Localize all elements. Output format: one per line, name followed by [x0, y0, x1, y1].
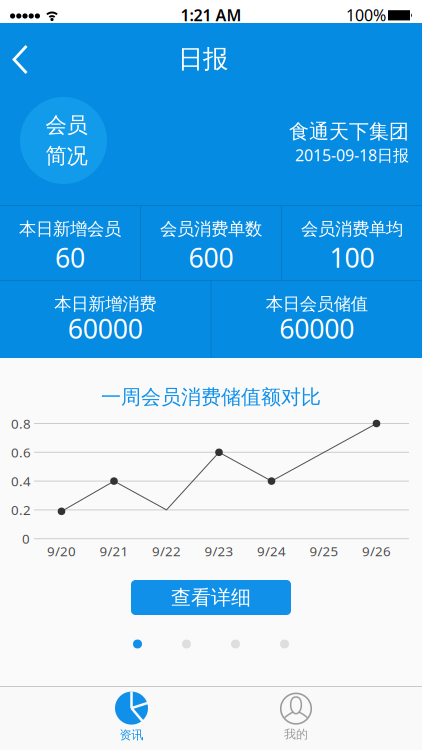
staticText: 会员消费单数 — [160, 218, 262, 240]
button[interactable]: 查看详细 — [131, 580, 291, 615]
staticText: 100 — [329, 240, 374, 275]
staticText: 9/21 — [99, 542, 128, 560]
staticText: 9/26 — [362, 542, 391, 560]
staticText: 60000 — [68, 311, 143, 346]
staticText: 本日新增会员 — [19, 218, 121, 240]
staticText: 0.2 — [11, 501, 31, 519]
staticText: 600 — [188, 240, 233, 275]
staticText: 会员消费单均 — [301, 218, 403, 240]
staticText: 0 — [22, 530, 30, 547]
staticText: 60000 — [279, 311, 354, 346]
staticText: 9/25 — [309, 542, 338, 560]
staticText: 食通天下集团 — [289, 119, 409, 144]
staticText: 60 — [55, 240, 85, 275]
staticText: 2015-09-18日报 — [295, 144, 409, 166]
staticText: 本日新增消费 — [54, 293, 156, 315]
staticText: 9/22 — [152, 542, 181, 560]
staticText: 0.4 — [11, 472, 31, 490]
staticText: 一周会员消费储值额对比 — [101, 385, 321, 409]
staticText: 100% — [346, 4, 386, 26]
staticText: 0.8 — [11, 415, 31, 432]
button[interactable]: 资讯 — [81, 688, 181, 746]
staticText: 我的 — [284, 727, 308, 742]
button[interactable]: 我的 — [246, 688, 346, 746]
staticText: 查看详细 — [171, 585, 251, 610]
staticText: 简况 — [45, 143, 87, 169]
staticText: 本日会员储值 — [266, 293, 368, 315]
staticText: 0.6 — [11, 443, 31, 461]
staticText: 会员 — [45, 112, 87, 138]
button[interactable]: Back — [2, 34, 40, 85]
staticText: 9/24 — [257, 542, 286, 560]
staticText: 1:21 AM — [180, 4, 241, 26]
staticText: 9/20 — [47, 542, 76, 560]
staticText: 9/23 — [204, 542, 233, 560]
staticText: 资讯 — [119, 728, 143, 742]
staticText: 日报 — [178, 43, 228, 74]
